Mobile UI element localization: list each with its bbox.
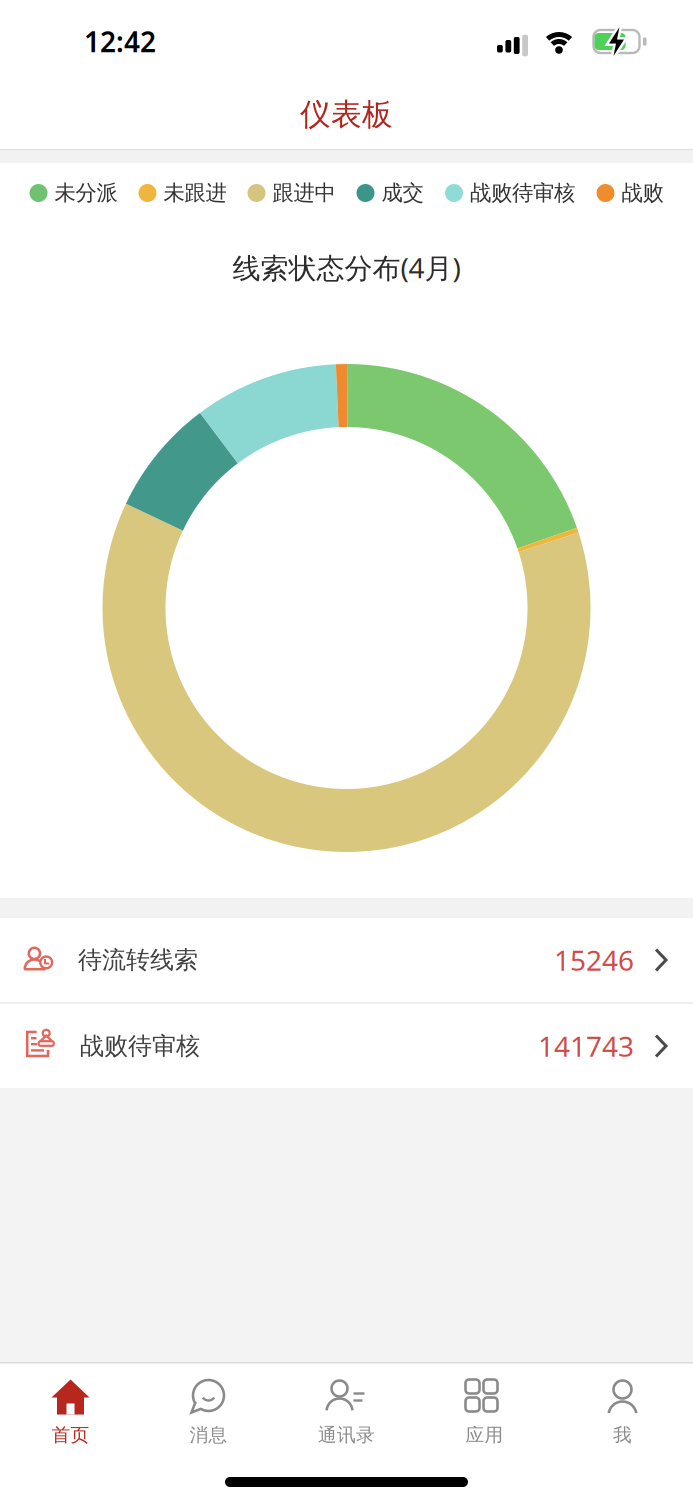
button[interactable]: 通讯录 xyxy=(277,1366,415,1446)
button[interactable]: 消息 xyxy=(139,1366,277,1446)
button[interactable]: 未分派 xyxy=(29,178,118,208)
button[interactable]: 跟进中 xyxy=(247,178,336,208)
staticText: 成交 xyxy=(381,180,423,206)
staticText: 消息 xyxy=(189,1423,227,1446)
button[interactable]: 战败待审核 xyxy=(444,178,576,208)
staticText: 跟进中 xyxy=(272,180,335,206)
button[interactable]: 未跟进 xyxy=(138,178,227,208)
staticText: 首页 xyxy=(51,1423,89,1446)
staticText: 141743 xyxy=(538,1027,634,1065)
staticText: 未分派 xyxy=(54,180,117,206)
button[interactable]: 成交 xyxy=(356,178,424,208)
staticText: 待流转线索 xyxy=(78,945,198,975)
button[interactable]: 战败 xyxy=(596,178,664,208)
staticText: 通讯录 xyxy=(318,1423,375,1446)
staticText: 仪表板 xyxy=(300,96,393,133)
button[interactable]: 战败待审核 xyxy=(0,1004,693,1088)
staticText: 12:42 xyxy=(84,23,156,60)
button[interactable]: 我 xyxy=(553,1366,691,1446)
staticText: 应用 xyxy=(465,1423,503,1446)
staticText: 线索状态分布(4月) xyxy=(232,249,460,286)
staticText: 15246 xyxy=(554,941,634,979)
button[interactable]: 待流转线索 xyxy=(0,918,693,1002)
staticText: 未跟进 xyxy=(163,180,226,206)
button[interactable]: 首页 xyxy=(1,1366,139,1446)
staticText: 战败待审核 xyxy=(470,180,575,206)
staticText: 战败待审核 xyxy=(80,1031,200,1061)
staticText: 战败 xyxy=(621,180,663,206)
staticText: 我 xyxy=(613,1423,632,1446)
button[interactable]: 应用 xyxy=(415,1366,553,1446)
